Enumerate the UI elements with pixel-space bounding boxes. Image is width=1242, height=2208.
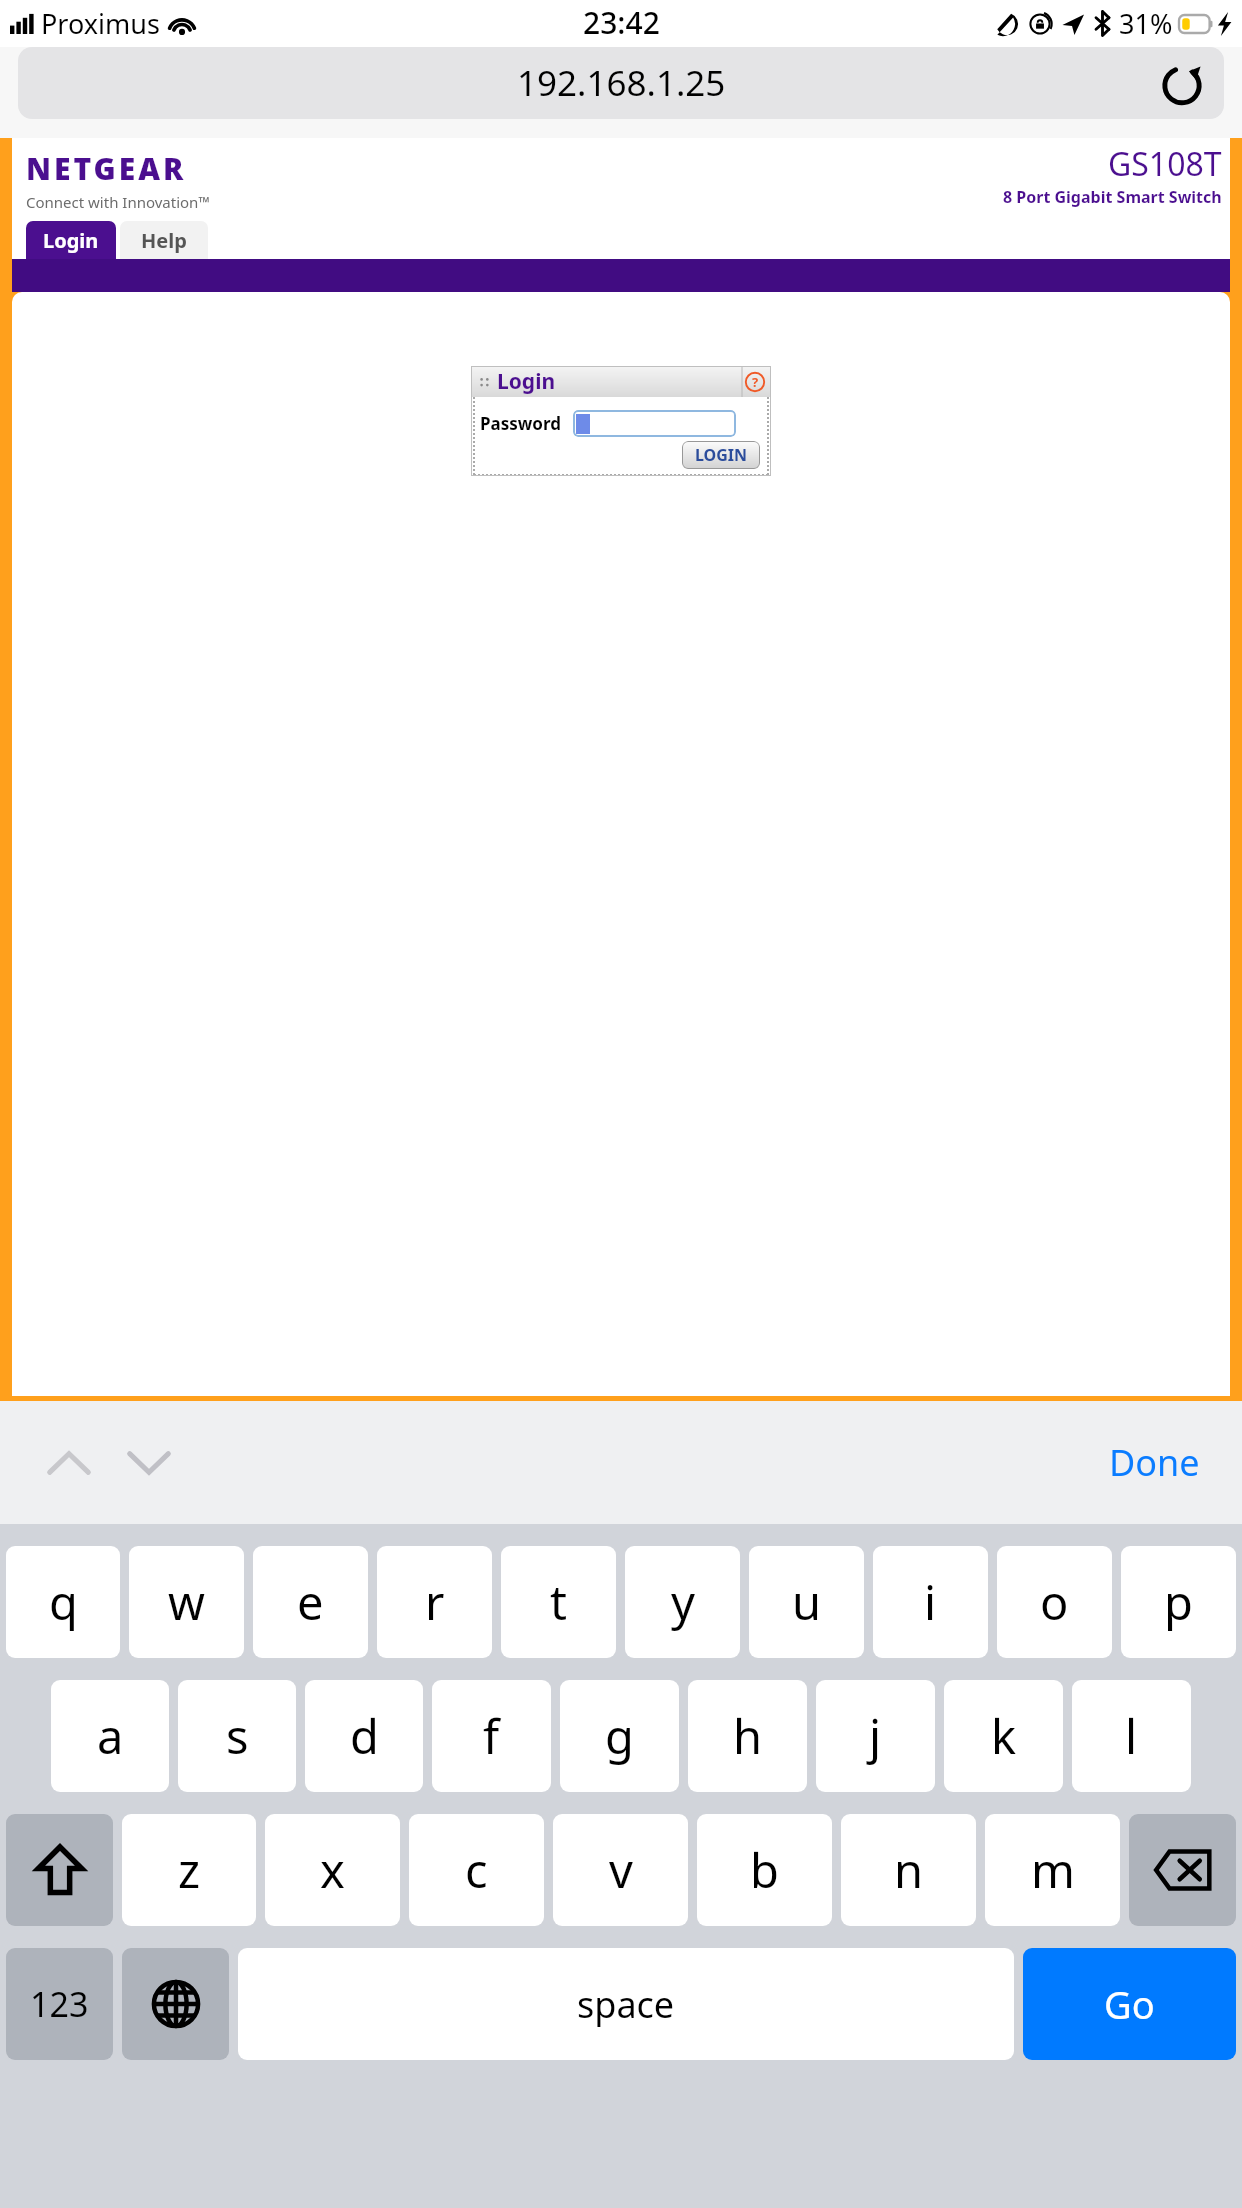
staticText: e xyxy=(297,1570,324,1634)
button[interactable]: 192.168.1.25 xyxy=(18,47,1224,119)
button[interactable]: Login xyxy=(26,221,116,259)
button[interactable]: n xyxy=(841,1814,976,1926)
button[interactable]: i xyxy=(873,1546,988,1658)
staticText: 8 Port Gigabit Smart Switch xyxy=(1003,186,1222,208)
button[interactable]: LOGIN xyxy=(682,441,760,469)
staticText: d xyxy=(350,1704,379,1768)
button[interactable]: u xyxy=(749,1546,864,1658)
button[interactable]: m xyxy=(985,1814,1120,1926)
button[interactable]: Backspace xyxy=(1129,1814,1236,1926)
button[interactable]: s xyxy=(178,1680,296,1792)
staticText: ? xyxy=(752,373,759,391)
button[interactable]: d xyxy=(305,1680,423,1792)
staticText: w xyxy=(168,1570,205,1634)
button[interactable]: r xyxy=(377,1546,492,1658)
button[interactable]: Help xyxy=(745,372,765,392)
staticText: 192.168.1.25 xyxy=(517,59,726,107)
button[interactable]: Next field xyxy=(118,1432,180,1494)
button[interactable]: c xyxy=(409,1814,544,1926)
button[interactable]: v xyxy=(553,1814,688,1926)
staticText: o xyxy=(1040,1570,1069,1634)
button[interactable]: Change keyboard xyxy=(122,1948,229,2060)
button[interactable]: Done xyxy=(1097,1428,1212,1497)
button[interactable]: Reload xyxy=(1156,57,1208,109)
staticText: LOGIN xyxy=(695,444,748,466)
staticText: Login xyxy=(497,367,556,396)
staticText: c xyxy=(465,1838,488,1902)
button[interactable]: p xyxy=(1121,1546,1236,1658)
staticText: a xyxy=(97,1704,124,1768)
staticText: Done xyxy=(1109,1438,1200,1487)
staticText: 31% xyxy=(1119,5,1173,42)
staticText: r xyxy=(425,1570,445,1634)
staticText: space xyxy=(577,1980,675,2029)
button[interactable]: a xyxy=(51,1680,169,1792)
staticText: q xyxy=(49,1570,78,1634)
staticText: Password xyxy=(480,412,561,435)
button[interactable]: Shift xyxy=(6,1814,113,1926)
staticText: t xyxy=(550,1570,567,1634)
button[interactable]: j xyxy=(816,1680,935,1792)
staticText: y xyxy=(671,1570,695,1634)
button[interactable]: z xyxy=(122,1814,256,1926)
button[interactable] xyxy=(573,410,736,437)
staticText: Help xyxy=(141,227,187,254)
staticText: p xyxy=(1164,1570,1193,1634)
button[interactable]: g xyxy=(560,1680,679,1792)
button[interactable]: 123 xyxy=(6,1948,113,2060)
staticText: k xyxy=(991,1704,1017,1768)
button[interactable]: e xyxy=(253,1546,368,1658)
staticText: Login xyxy=(43,227,99,254)
staticText: l xyxy=(1125,1704,1138,1768)
button[interactable]: o xyxy=(997,1546,1112,1658)
button[interactable]: space xyxy=(238,1948,1014,2060)
staticText: Proximus xyxy=(41,5,160,42)
staticText: i xyxy=(924,1570,937,1634)
button[interactable]: w xyxy=(129,1546,244,1658)
button[interactable]: Previous field xyxy=(38,1432,100,1494)
staticText: 123 xyxy=(30,1981,89,2027)
staticText: GS108T xyxy=(1108,142,1222,186)
staticText: n xyxy=(894,1838,924,1902)
staticText: g xyxy=(605,1704,634,1768)
staticText: f xyxy=(483,1704,500,1768)
staticText: Go xyxy=(1104,1978,1155,2030)
staticText: h xyxy=(733,1704,763,1768)
button[interactable]: Go xyxy=(1023,1948,1236,2060)
staticText: x xyxy=(320,1838,345,1902)
staticText: u xyxy=(792,1570,822,1634)
staticText: j xyxy=(869,1704,882,1768)
staticText: b xyxy=(750,1838,779,1902)
button[interactable]: h xyxy=(688,1680,807,1792)
button[interactable]: b xyxy=(697,1814,832,1926)
staticText: z xyxy=(178,1838,201,1902)
staticText: m xyxy=(1031,1838,1075,1902)
staticText: Connect with Innovation™ xyxy=(26,192,210,212)
button[interactable]: l xyxy=(1072,1680,1191,1792)
button[interactable]: f xyxy=(432,1680,551,1792)
staticText: s xyxy=(226,1704,249,1768)
button[interactable]: q xyxy=(6,1546,120,1658)
staticText: 23:42 xyxy=(583,2,660,43)
button[interactable]: k xyxy=(944,1680,1063,1792)
button[interactable]: x xyxy=(265,1814,400,1926)
button[interactable]: y xyxy=(625,1546,740,1658)
staticText: NETGEAR xyxy=(26,148,187,189)
button[interactable]: Help xyxy=(120,221,208,259)
staticText: v xyxy=(609,1838,633,1902)
button[interactable]: t xyxy=(501,1546,616,1658)
